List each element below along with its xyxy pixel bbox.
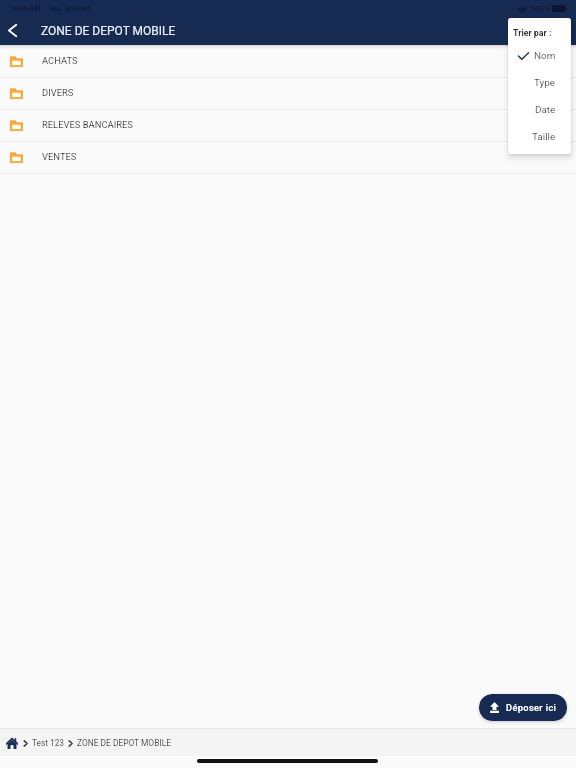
staticText: Nom [534, 50, 556, 62]
button[interactable]: ACHATS [0, 46, 576, 78]
staticText: Type [534, 77, 556, 89]
staticText: RELEVES BANCAIRES [42, 119, 133, 130]
staticText: DIVERS [42, 87, 74, 98]
button[interactable]: RELEVES BANCAIRES [0, 110, 576, 142]
button[interactable]: Test 123 [32, 738, 64, 748]
button[interactable]: Date [508, 96, 571, 123]
button[interactable]: DIVERS [0, 78, 576, 110]
staticText: Taille [532, 131, 556, 143]
button[interactable]: VENTES [0, 142, 576, 174]
staticText: ACHATS [42, 55, 78, 66]
staticText: Trier par : [513, 28, 552, 38]
staticText: 10:49 AM [10, 5, 41, 13]
button[interactable]: Home [6, 737, 18, 749]
button[interactable]: Déposer ici [479, 694, 567, 721]
staticText: ZONE DE DEPOT MOBILE [77, 738, 171, 748]
staticText: ZONE DE DEPOT MOBILE [41, 24, 176, 38]
staticText: VENTES [42, 151, 77, 162]
staticText: Déposer ici [506, 702, 557, 713]
button[interactable]: Back [0, 18, 26, 44]
button[interactable]: Type [508, 69, 571, 96]
staticText: Date [535, 104, 556, 116]
staticText: Jeu. 30 sept. [49, 4, 92, 13]
button[interactable]: Nom [508, 42, 571, 69]
staticText: 100 % [530, 4, 550, 13]
button[interactable]: Taille [508, 123, 571, 150]
